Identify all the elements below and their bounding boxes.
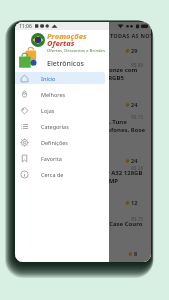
staticText: Capa Case Para iPhone 12 VX Case Couro — [22, 220, 147, 228]
staticText: Lojas — [41, 107, 55, 114]
staticText: 24 — [131, 157, 138, 164]
button[interactable]: R$ 28 — [15, 22, 151, 38]
staticText: 24 — [131, 101, 138, 108]
staticText: Início — [41, 75, 56, 82]
staticText: 12 — [131, 199, 138, 206]
button[interactable]: Início — [15, 70, 109, 86]
staticText: Eletrônicos — [47, 59, 84, 69]
staticText: TODAS AS NOTÍCIAS — [110, 32, 151, 39]
staticText: Definições — [41, 139, 68, 146]
button[interactable]: R$ 75 — [15, 22, 151, 30]
button[interactable]: Melhores — [15, 86, 109, 102]
button[interactable]: Lojas — [15, 102, 109, 118]
button[interactable]: Cerca de — [15, 166, 109, 182]
staticText: Ofertas, Descontos e Brindes — [47, 48, 106, 54]
staticText: R$ 89 — [15, 62, 143, 68]
button[interactable]: R$ 75 — [15, 22, 151, 38]
staticText: Fonte Gamer 500W 80 Plus Bronze com Cool… — [22, 66, 147, 82]
staticText: Fone de Ouvido Bluetooth JBL Tune Collec… — [22, 118, 147, 134]
staticText: 8 — [134, 250, 138, 257]
staticText: R$ 75 — [15, 216, 143, 222]
button[interactable]: R$ 89 — [15, 22, 151, 38]
staticText: Promoções — [47, 31, 87, 41]
button[interactable]: Favorita — [15, 150, 109, 166]
staticText: 29 — [131, 47, 138, 54]
staticText: Melhores — [41, 91, 66, 98]
button[interactable]: Definições — [15, 134, 109, 150]
staticText: Cerca de — [41, 171, 64, 178]
staticText: R$ 28 — [15, 165, 143, 171]
staticText: Smartphone Samsung Galaxy A32 128GB 4GB … — [22, 169, 147, 185]
staticText: Favorita — [41, 155, 62, 162]
button[interactable]: Categorias — [15, 118, 109, 134]
staticText: Ofertas — [47, 38, 75, 48]
staticText: R$ 75 — [15, 114, 143, 120]
staticText: 11:06 — [19, 23, 32, 30]
staticText: Categorias — [41, 123, 69, 130]
